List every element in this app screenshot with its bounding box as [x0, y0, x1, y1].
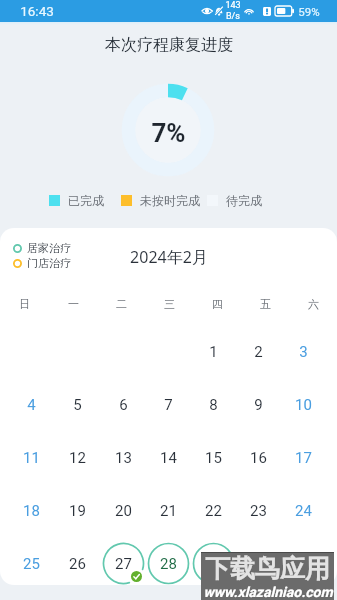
- other: Mobile data: [263, 7, 271, 16]
- button[interactable]: 11: [8, 431, 54, 484]
- other: Wi-Fi: [244, 7, 254, 15]
- staticText: 8: [209, 396, 218, 414]
- staticText: 18: [23, 502, 40, 520]
- button[interactable]: 门店治疗: [13, 256, 71, 270]
- button[interactable]: [236, 537, 281, 585]
- button[interactable]: 22: [191, 484, 236, 537]
- staticText: 六: [308, 297, 319, 311]
- button[interactable]: 14: [146, 431, 191, 484]
- staticText: 15: [205, 449, 222, 467]
- staticText: 12: [69, 449, 86, 467]
- staticText: 7: [164, 396, 173, 414]
- button[interactable]: 18: [8, 484, 54, 537]
- staticText: 16:43: [20, 3, 54, 19]
- staticText: 门店治疗: [27, 256, 71, 270]
- button[interactable]: 6: [100, 378, 146, 431]
- button[interactable]: 12: [54, 431, 100, 484]
- staticText: 9: [254, 396, 263, 414]
- staticText: 待完成: [226, 193, 262, 208]
- button[interactable]: 17: [281, 431, 326, 484]
- staticText: 143: [225, 0, 241, 11]
- button[interactable]: 21: [146, 484, 191, 537]
- staticText: 1: [209, 343, 218, 361]
- button[interactable]: 19: [54, 484, 100, 537]
- staticText: 10: [295, 396, 312, 414]
- other: Battery: [275, 6, 294, 16]
- button[interactable]: 8: [191, 378, 236, 431]
- staticText: 20: [115, 502, 132, 520]
- button[interactable]: 24: [281, 484, 326, 537]
- button[interactable]: 13: [100, 431, 146, 484]
- button[interactable]: [281, 537, 326, 585]
- other: Eye protection: [201, 7, 213, 15]
- button[interactable]: 未按时完成: [121, 193, 200, 208]
- staticText: 28: [160, 555, 177, 573]
- button[interactable]: 25: [8, 537, 54, 585]
- button[interactable]: 5: [54, 378, 100, 431]
- button[interactable]: 2: [236, 325, 281, 378]
- staticText: 一: [68, 297, 79, 311]
- staticText: 17: [295, 449, 312, 467]
- button[interactable]: 居家治疗: [13, 241, 71, 255]
- staticText: 14: [160, 449, 177, 467]
- staticText: 26: [69, 555, 86, 573]
- button[interactable]: 26: [54, 537, 100, 585]
- button[interactable]: 4: [8, 378, 54, 431]
- button[interactable]: 7: [146, 378, 191, 431]
- staticText: 25: [23, 555, 40, 573]
- staticText: 四: [212, 297, 223, 311]
- staticText: 2: [254, 343, 263, 361]
- button[interactable]: 28: [146, 537, 191, 585]
- staticText: 7%: [151, 118, 186, 148]
- staticText: 3: [299, 343, 308, 361]
- staticText: 21: [160, 502, 177, 520]
- staticText: 居家治疗: [27, 241, 71, 255]
- staticText: 23: [250, 502, 267, 520]
- button[interactable]: 待完成: [207, 193, 262, 208]
- staticText: 6: [119, 396, 128, 414]
- staticText: 24: [295, 502, 312, 520]
- staticText: 三: [164, 297, 175, 311]
- staticText: 19: [69, 502, 86, 520]
- button[interactable]: 9: [236, 378, 281, 431]
- staticText: 本次疗程康复进度: [105, 35, 233, 55]
- other: Silent mode: [215, 7, 223, 16]
- button[interactable]: 15: [191, 431, 236, 484]
- button[interactable]: 3: [281, 325, 326, 378]
- button[interactable]: 29: [191, 537, 236, 585]
- button[interactable]: 20: [100, 484, 146, 537]
- staticText: 59%: [298, 5, 320, 18]
- button[interactable]: 16: [236, 431, 281, 484]
- staticText: 下载鸟应用: [205, 553, 330, 584]
- staticText: 4: [27, 396, 36, 414]
- staticText: 5: [73, 396, 82, 414]
- button[interactable]: 已完成: [49, 193, 104, 208]
- staticText: 13: [115, 449, 132, 467]
- button[interactable]: 23: [236, 484, 281, 537]
- button[interactable]: 10: [281, 378, 326, 431]
- staticText: 二: [116, 297, 127, 311]
- staticText: www.xlazalniao.com: [203, 584, 333, 600]
- staticText: 29: [205, 555, 222, 573]
- staticText: 五: [260, 297, 271, 311]
- staticText: 未按时完成: [140, 193, 200, 208]
- staticText: 2024年2月: [130, 246, 208, 268]
- staticText: 22: [205, 502, 222, 520]
- staticText: 27: [115, 555, 132, 573]
- staticText: B/s: [226, 11, 240, 22]
- staticText: 11: [23, 449, 40, 467]
- button[interactable]: 1: [191, 325, 236, 378]
- button[interactable]: 27: [100, 537, 146, 585]
- staticText: 已完成: [68, 193, 104, 208]
- staticText: 日: [19, 297, 30, 311]
- staticText: 16: [250, 449, 267, 467]
